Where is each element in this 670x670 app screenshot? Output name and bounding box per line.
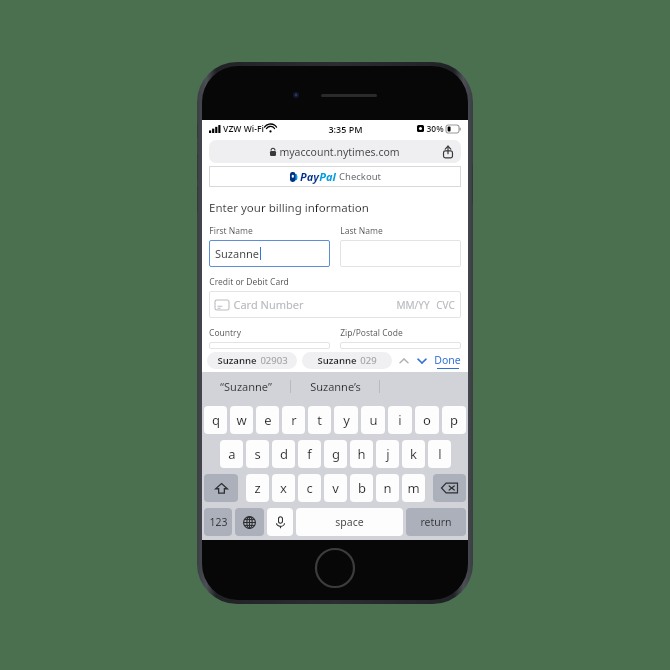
button[interactable]: myaccount.nytimes.com (209, 140, 461, 163)
button[interactable]: Share (441, 145, 455, 159)
button[interactable]: Suzanne (302, 352, 392, 369)
staticText: p (450, 411, 458, 429)
staticText: space (335, 515, 364, 529)
button[interactable]: Next field (415, 354, 429, 368)
button[interactable]: w (230, 406, 253, 434)
staticText: VZW Wi-Fi (223, 123, 264, 135)
button[interactable] (235, 508, 264, 536)
staticText: 02903 (260, 354, 288, 367)
button[interactable]: e (256, 406, 279, 434)
staticText: i (398, 411, 402, 429)
staticText: j (386, 445, 390, 463)
button[interactable]: y (334, 406, 358, 434)
staticText: k (410, 445, 417, 463)
staticText: Credit or Debit Card (209, 276, 289, 288)
button[interactable]: r (282, 406, 305, 434)
button[interactable]: c (298, 474, 321, 502)
button[interactable]: Done (434, 353, 461, 369)
button[interactable]: f (298, 440, 321, 468)
button[interactable]: q (204, 406, 227, 434)
staticText: Suzanne (217, 354, 257, 367)
button[interactable]: Suzanne’s (291, 372, 379, 401)
button[interactable]: p (442, 406, 466, 434)
staticText: 123 (209, 515, 228, 529)
staticText: MM/YY (396, 298, 430, 312)
button[interactable]: z (246, 474, 269, 502)
staticText: Checkout (339, 170, 381, 183)
button[interactable]: o (415, 406, 439, 434)
button[interactable]: Pay (209, 166, 461, 187)
staticText: g (332, 445, 340, 463)
button[interactable]: “Suzanne” (202, 372, 290, 401)
staticText: return (420, 515, 452, 529)
staticText: h (357, 445, 366, 463)
staticText: v (332, 479, 339, 497)
staticText: o (423, 411, 431, 429)
button[interactable]: g (324, 440, 347, 468)
staticText: Done (434, 353, 461, 367)
staticText: Pay (300, 169, 319, 184)
staticText: u (369, 411, 378, 429)
staticText: “Suzanne” (220, 379, 272, 394)
staticText: b (358, 479, 366, 497)
button[interactable]: a (220, 440, 243, 468)
button[interactable]: i (388, 406, 412, 434)
staticText: c (306, 479, 313, 497)
button[interactable]: b (350, 474, 373, 502)
staticText: Suzanne’s (310, 379, 361, 394)
staticText: x (280, 479, 287, 497)
staticText: First Name (209, 225, 253, 237)
button[interactable]: Card Number (209, 291, 461, 318)
button[interactable]: h (350, 440, 373, 468)
button[interactable]: space (296, 508, 403, 536)
staticText: d (280, 445, 288, 463)
staticText: Zip/Postal Code (340, 327, 403, 339)
button[interactable] (340, 342, 461, 349)
button[interactable]: Previous field (397, 354, 411, 368)
staticText: r (291, 411, 297, 429)
button[interactable]: Suzanne (207, 352, 297, 369)
staticText: n (383, 479, 392, 497)
staticText: e (264, 411, 272, 429)
button[interactable] (340, 240, 461, 267)
staticText: Suzanne (317, 354, 357, 367)
button[interactable]: Shift (204, 474, 238, 502)
staticText: z (254, 479, 261, 497)
staticText: l (438, 445, 442, 463)
staticText: 30% (426, 123, 444, 135)
button[interactable] (209, 342, 330, 349)
staticText: Country (209, 327, 241, 339)
button[interactable]: 123 (204, 508, 232, 536)
button[interactable]: Backspace (433, 474, 466, 502)
staticText: Last Name (340, 225, 383, 237)
button[interactable]: t (308, 406, 331, 434)
button[interactable]: return (406, 508, 466, 536)
staticText: Suzanne (215, 246, 259, 261)
staticText: myaccount.nytimes.com (279, 145, 400, 159)
button[interactable] (267, 508, 293, 536)
button[interactable]: n (376, 474, 399, 502)
button[interactable]: k (402, 440, 425, 468)
staticText: q (212, 411, 220, 429)
staticText: y (343, 411, 350, 429)
button[interactable]: d (272, 440, 295, 468)
staticText: Pal (319, 169, 336, 184)
button[interactable]: x (272, 474, 295, 502)
staticText: a (228, 445, 236, 463)
button[interactable]: v (324, 474, 347, 502)
button[interactable]: s (246, 440, 269, 468)
button[interactable]: l (428, 440, 451, 468)
staticText: t (317, 411, 322, 429)
button[interactable]: Suzanne (209, 240, 330, 267)
button[interactable]: m (402, 474, 425, 502)
staticText: 3:35 PM (328, 123, 363, 135)
staticText: CVC (436, 298, 455, 312)
staticText: 029 (360, 354, 377, 367)
staticText: m (407, 479, 420, 497)
staticText: s (254, 445, 261, 463)
staticText: w (236, 411, 247, 429)
staticText: f (307, 445, 312, 463)
button[interactable]: j (376, 440, 399, 468)
button[interactable]: u (361, 406, 385, 434)
